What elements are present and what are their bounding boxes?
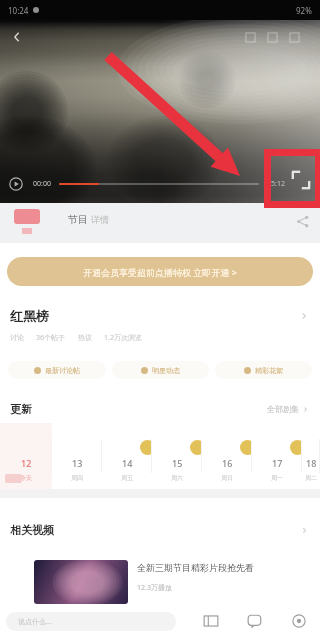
button[interactable]: 说点什么... [6,612,176,631]
button[interactable]: Channel logo [14,209,40,234]
staticText: 讨论 [10,333,24,342]
staticText: 36个帖子 [36,333,66,343]
button[interactable]: 精彩花絮 [215,361,312,379]
staticText: 周日 [221,474,233,482]
button[interactable]: 最新讨论帖 [8,361,106,379]
staticText: 红黑榜 [10,308,49,324]
staticText: 13 [72,457,83,469]
staticText: 周五 [121,474,133,482]
button[interactable]: Share [290,612,308,630]
staticText: 最新讨论帖 [45,366,80,375]
staticText: 节目 [68,213,88,226]
staticText: 92% [296,5,312,16]
button[interactable]: Back [10,30,24,44]
staticText: 1.2万次浏览 [104,333,142,343]
button[interactable]: Option [288,31,301,44]
staticText: 15 [172,457,183,469]
button[interactable]: More videos [299,525,310,536]
button[interactable]: Play [9,177,23,191]
staticText: 17 [272,457,283,469]
staticText: 全部剧集 [267,404,299,414]
staticText: 12 [21,457,32,469]
button[interactable]: 全部剧集 [267,404,310,414]
staticText: 14 [122,457,133,469]
button[interactable]: 17 [252,423,302,489]
button[interactable]: 16 [202,423,252,489]
button[interactable]: 15 [152,423,202,489]
staticText: 45:12 [267,179,285,189]
staticText: 16 [222,457,233,469]
button[interactable]: Share [295,214,310,229]
staticText: 说点什么... [18,617,52,627]
button[interactable]: Fullscreen [264,149,320,208]
button[interactable]: 18 [302,423,320,489]
button[interactable]: 13 [52,423,102,489]
button[interactable]: 开通会员享受超前点播特权 立即开通 > [7,257,313,286]
button[interactable]: Option [266,31,279,44]
button[interactable]: More [298,310,310,322]
staticText: 周一 [271,474,283,482]
staticText: 开通会员享受超前点播特权 立即开通 > [83,266,237,278]
staticText: 周二 [305,474,317,482]
button[interactable]: 明星动态 [112,361,209,379]
staticText: 精彩花絮 [255,366,283,375]
button[interactable]: Vote [202,612,220,630]
staticText: 热议 [78,333,92,342]
staticText: 明星动态 [152,366,180,375]
staticText: 全新三期节目精彩片段抢先看 [137,562,254,573]
button[interactable]: Comment [246,612,264,630]
staticText: 10:24 [8,5,29,16]
button[interactable]: 14 [102,423,152,489]
staticText: 18 [306,457,317,469]
staticText: 周四 [71,474,83,482]
staticText: 今天 [20,474,32,482]
button[interactable]: 全新三期节目精彩片段抢先看 [34,560,310,604]
staticText: 周六 [171,474,183,482]
staticText: 详情 [91,214,109,225]
staticText: 更新 [10,402,32,416]
staticText: 相关视频 [10,523,54,537]
staticText: 00:00 [33,179,51,189]
button[interactable]: 12 [0,423,52,489]
staticText: 12.3万播放 [137,583,172,593]
button[interactable]: Option [244,31,257,44]
